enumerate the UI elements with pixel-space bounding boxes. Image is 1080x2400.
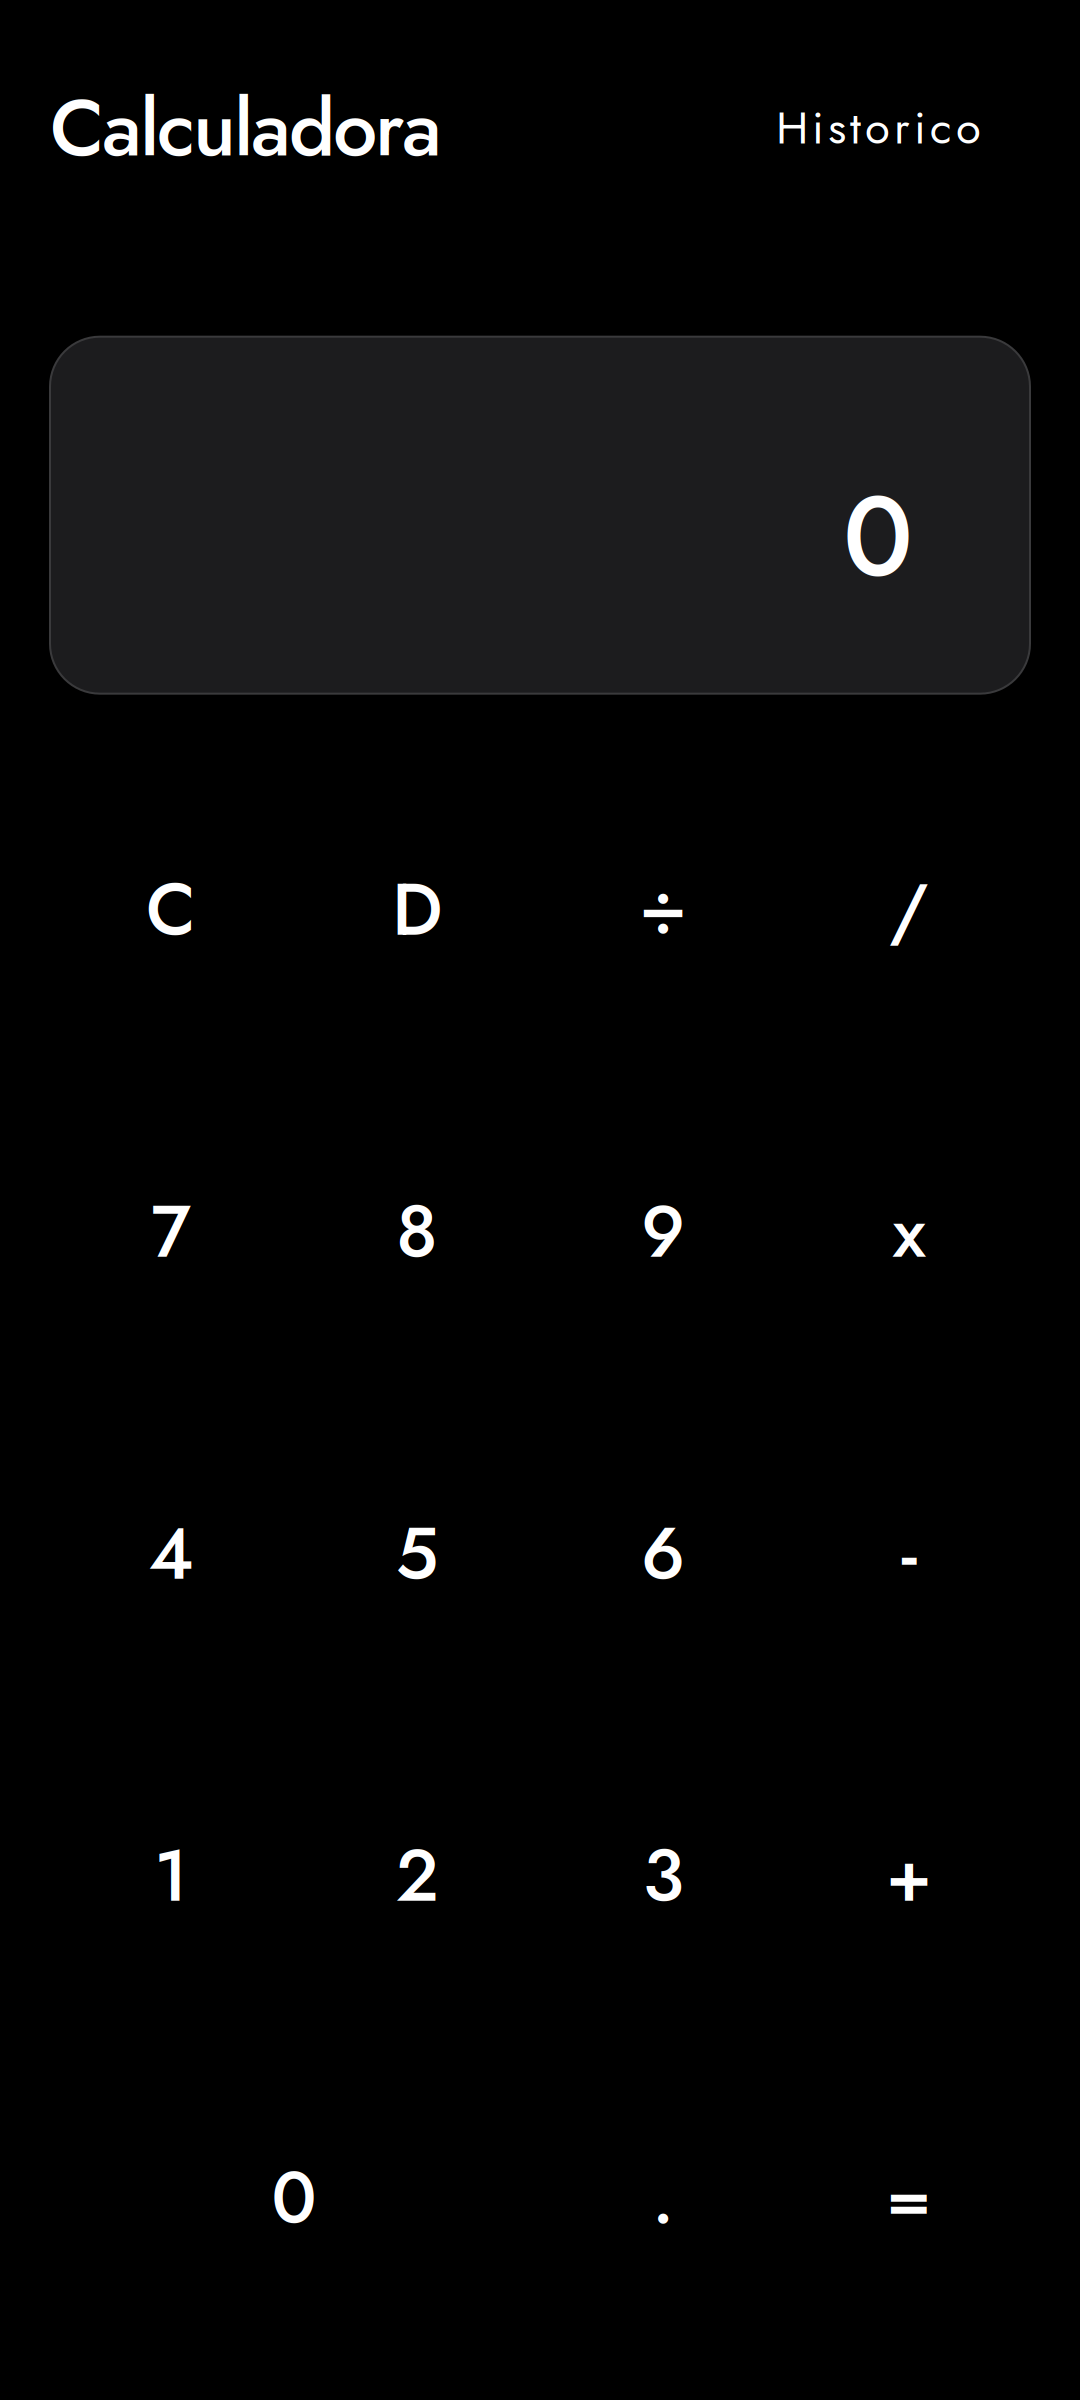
staticText: 1 [154,1824,188,1928]
button[interactable]: D [294,749,540,1071]
button[interactable]: 4 [48,1393,294,1715]
staticText: / [889,858,929,962]
button[interactable]: 1 [48,1715,294,2037]
staticText: 3 [642,1824,683,1928]
button[interactable]: 5 [294,1393,540,1715]
button[interactable]: ÷ [540,749,786,1071]
button[interactable]: 3 [540,1715,786,2037]
staticText: 8 [396,1180,438,1284]
button[interactable]: 2 [294,1715,540,2037]
staticText: 0 [271,2146,316,2250]
button[interactable]: 6 [540,1393,786,1715]
staticText: Historico [776,95,981,161]
staticText: . [652,2146,674,2250]
staticText: 0 [843,456,913,617]
staticText: ÷ [640,858,685,962]
staticText: 4 [148,1502,193,1606]
button[interactable]: / [786,749,1032,1071]
button[interactable]: 8 [294,1071,540,1393]
staticText: 9 [641,1180,685,1284]
staticText: D [392,858,442,962]
staticText: + [886,1824,932,1928]
button[interactable]: 0 [48,2037,540,2359]
button[interactable]: x [786,1071,1032,1393]
staticText: 2 [395,1824,438,1928]
button[interactable]: - [786,1393,1032,1715]
button[interactable]: + [786,1715,1032,2037]
button[interactable]: C [48,749,294,1071]
staticText: Calculadora [50,71,442,185]
staticText: 7 [151,1180,191,1284]
button[interactable]: . [540,2037,786,2359]
staticText: 5 [395,1502,438,1606]
button[interactable]: 9 [540,1071,786,1393]
staticText: x [892,1180,925,1284]
button[interactable]: Historico [776,95,981,161]
button[interactable]: = [786,2037,1032,2359]
staticText: 6 [641,1502,685,1606]
staticText: = [886,2146,931,2250]
button[interactable]: 7 [48,1071,294,1393]
staticText: - [901,1502,916,1606]
staticText: C [146,858,196,962]
